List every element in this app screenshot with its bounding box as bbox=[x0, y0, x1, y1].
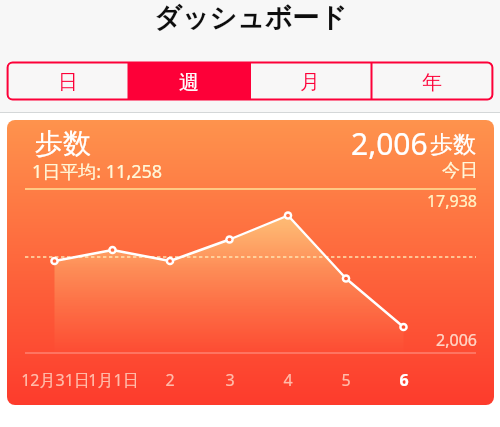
button[interactable]: 日 bbox=[7, 62, 128, 100]
button[interactable]: 月 bbox=[249, 62, 371, 100]
staticText: 4 bbox=[283, 369, 293, 391]
staticText: ダッシュボード bbox=[154, 1, 347, 35]
staticText: 年 bbox=[422, 70, 442, 95]
button[interactable]: 歩数 2,006歩数 今日 bbox=[7, 120, 494, 405]
staticText: 1月1日 bbox=[88, 369, 139, 391]
staticText: 2 bbox=[165, 369, 175, 391]
button[interactable]: 年 bbox=[371, 62, 493, 100]
staticText: 5 bbox=[341, 369, 351, 391]
staticText: 17,938 bbox=[357, 190, 477, 212]
staticText: 2,006 bbox=[357, 329, 477, 351]
staticText: 週 bbox=[179, 70, 199, 95]
staticText: 日 bbox=[58, 70, 78, 95]
staticText: 2,006 bbox=[351, 123, 428, 164]
staticText: 歩数 bbox=[430, 130, 476, 159]
staticText: 12月31日 bbox=[21, 369, 90, 391]
staticText: 今日 bbox=[442, 159, 478, 182]
staticText: 歩数 bbox=[35, 126, 91, 161]
staticText: 1日平均: 11,258 bbox=[32, 159, 163, 184]
staticText: 月 bbox=[300, 70, 320, 95]
staticText: 6 bbox=[399, 369, 409, 391]
button[interactable]: 週 bbox=[128, 62, 249, 100]
staticText: 3 bbox=[225, 369, 235, 391]
